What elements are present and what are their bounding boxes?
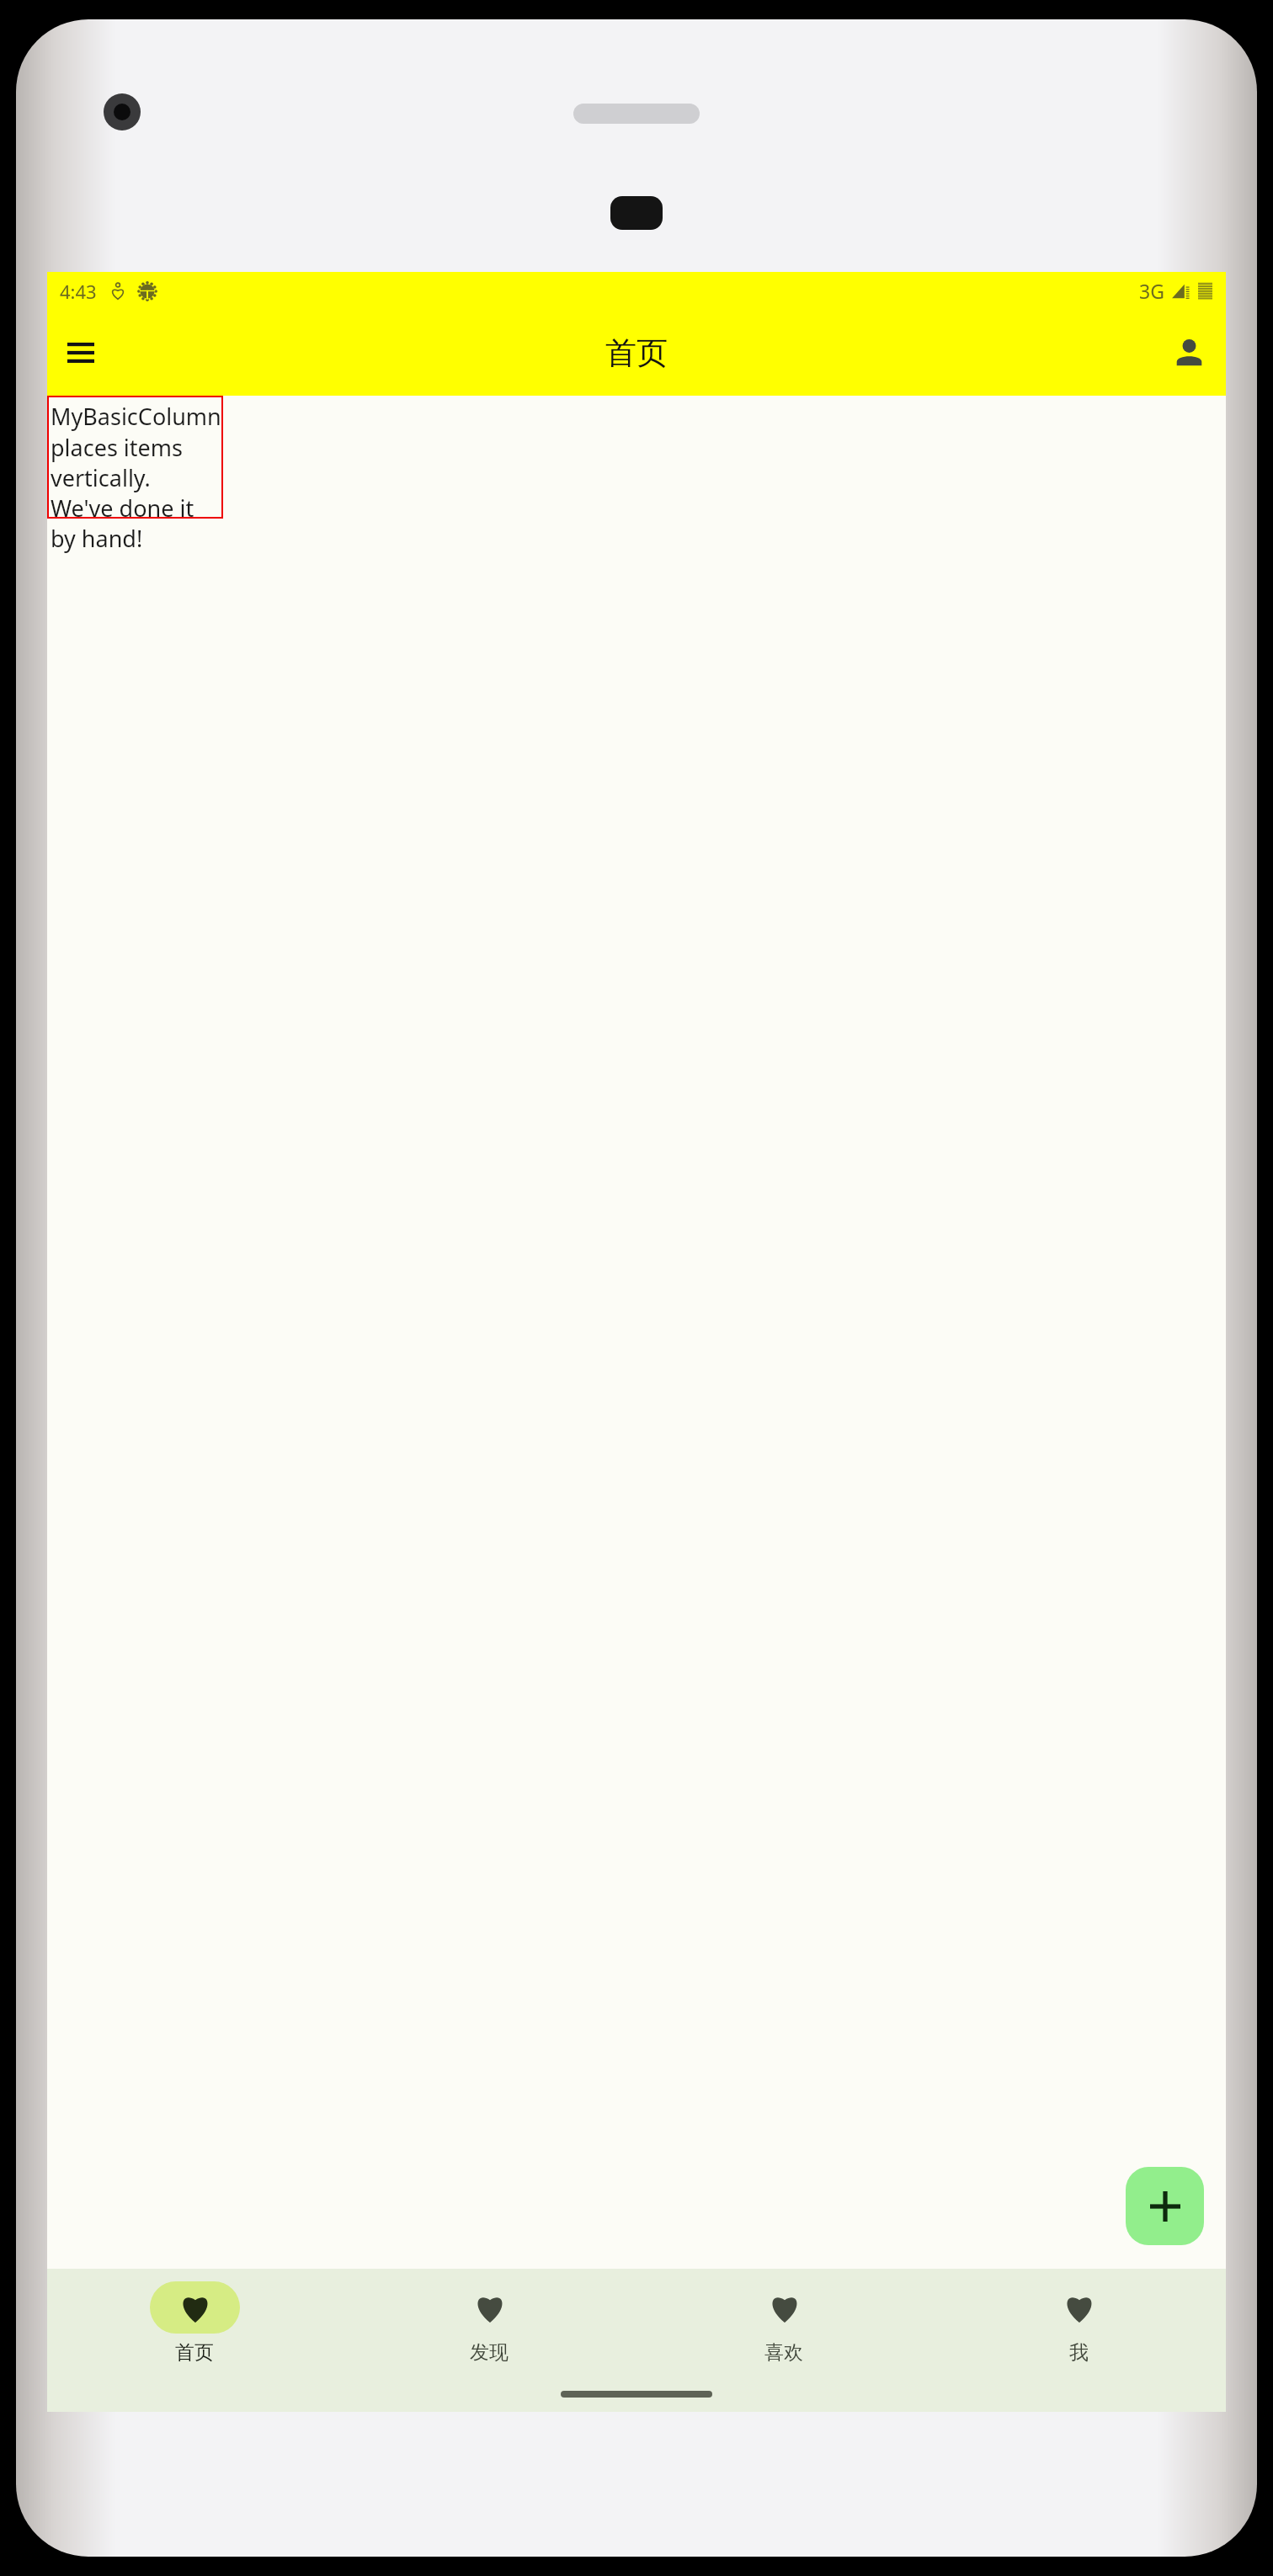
staticText: 首页 xyxy=(605,333,668,373)
staticText: 喜欢 xyxy=(764,2340,803,2365)
button[interactable]: Account xyxy=(1165,329,1212,376)
staticText: 4:43 xyxy=(60,279,97,304)
button[interactable]: Menu xyxy=(57,329,104,376)
button[interactable]: 喜欢 xyxy=(636,2269,931,2376)
staticText: 发现 xyxy=(470,2340,509,2365)
button[interactable]: 首页 xyxy=(47,2269,342,2376)
button[interactable]: Add xyxy=(1126,2167,1204,2245)
staticText: MyBasicColumn places items vertically. W… xyxy=(51,401,223,554)
staticText: 首页 xyxy=(175,2340,214,2365)
button[interactable]: 发现 xyxy=(342,2269,636,2376)
button[interactable]: 我 xyxy=(931,2269,1226,2376)
staticText: 3G xyxy=(1139,278,1164,304)
staticText: 我 xyxy=(1069,2340,1089,2365)
